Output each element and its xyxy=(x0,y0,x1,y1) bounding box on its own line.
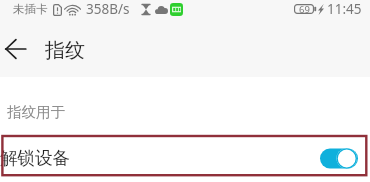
button[interactable]: 解锁设备 xyxy=(0,141,370,175)
staticText: 69 xyxy=(299,3,310,13)
staticText: 解锁设备 xyxy=(0,147,70,169)
button[interactable]: Unlock device toggle xyxy=(320,148,358,169)
button[interactable]: Back xyxy=(0,33,30,65)
staticText: 358B/s xyxy=(86,0,130,18)
staticText: 未插卡 xyxy=(13,2,48,16)
staticText: 指纹 xyxy=(45,38,85,63)
staticText: 指纹用于 xyxy=(7,103,65,121)
staticText: 11:45 xyxy=(327,0,362,18)
